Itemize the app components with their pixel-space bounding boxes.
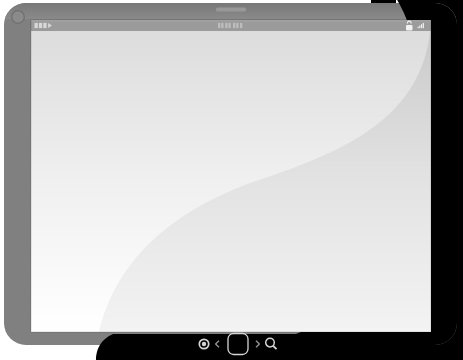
button[interactable]: Home <box>226 331 250 357</box>
button[interactable]: Signal strength <box>416 20 430 32</box>
button[interactable]: Search <box>261 332 281 356</box>
button[interactable]: Previous <box>211 333 224 355</box>
button[interactable]: Lock <box>402 20 416 32</box>
button[interactable]: Back <box>195 333 214 355</box>
button[interactable]: Next <box>253 333 266 355</box>
